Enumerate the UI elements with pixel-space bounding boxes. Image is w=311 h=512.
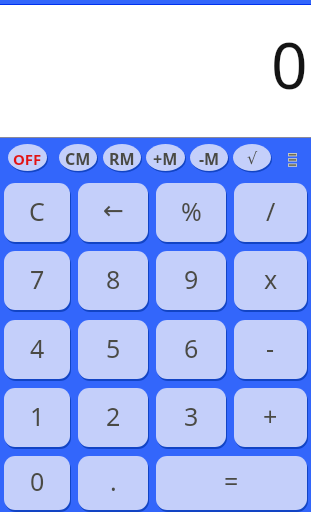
staticText: +M [153, 148, 178, 170]
staticText: C [29, 194, 45, 228]
button[interactable]: C [4, 183, 70, 242]
button[interactable]: 3 [156, 388, 226, 447]
button[interactable] [288, 153, 298, 168]
button[interactable]: % [156, 183, 226, 242]
staticText: √ [247, 149, 258, 168]
button[interactable]: 8 [78, 251, 148, 310]
button[interactable]: OFF [8, 144, 47, 171]
staticText: 5 [106, 331, 121, 365]
button[interactable]: 2 [78, 388, 148, 447]
button[interactable]: CM [59, 144, 97, 171]
button[interactable]: 6 [156, 320, 226, 379]
button[interactable]: -M [190, 144, 228, 171]
staticText: -M [199, 148, 220, 170]
button[interactable]: 5 [78, 320, 148, 379]
staticText: 6 [184, 331, 199, 365]
staticText: 3 [184, 399, 199, 433]
staticText: = [224, 464, 239, 498]
staticText: 0 [30, 464, 45, 498]
staticText: . [110, 464, 117, 498]
button[interactable]: √ [233, 144, 271, 171]
button[interactable]: / [234, 183, 307, 242]
button[interactable]: 9 [156, 251, 226, 310]
button[interactable]: +M [146, 144, 185, 171]
button[interactable]: . [78, 456, 148, 510]
staticText: 2 [106, 399, 121, 433]
staticText: OFF [13, 149, 42, 169]
staticText: 9 [184, 262, 199, 296]
staticText: RM [109, 148, 135, 170]
staticText: 4 [30, 331, 45, 365]
staticText: - [266, 331, 275, 365]
staticText: 0 [271, 21, 308, 108]
staticText: x [264, 262, 278, 296]
button[interactable]: ← [78, 183, 148, 242]
button[interactable]: = [156, 456, 307, 510]
button[interactable]: 1 [4, 388, 70, 447]
button[interactable]: + [234, 388, 307, 447]
button[interactable]: RM [103, 144, 141, 171]
button[interactable]: 4 [4, 320, 70, 379]
button[interactable]: 7 [4, 251, 70, 310]
staticText: ← [103, 196, 124, 225]
staticText: + [263, 399, 278, 433]
button[interactable]: x [234, 251, 307, 310]
staticText: / [266, 194, 276, 228]
staticText: 7 [30, 262, 45, 296]
staticText: % [181, 194, 202, 228]
staticText: CM [65, 148, 91, 170]
staticText: 1 [30, 399, 45, 433]
button[interactable]: - [234, 320, 307, 379]
button[interactable]: 0 [4, 456, 70, 510]
staticText: 8 [106, 262, 121, 296]
